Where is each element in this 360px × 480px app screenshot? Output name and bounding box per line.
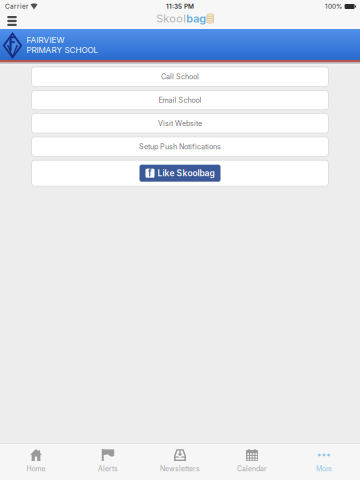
button[interactable]: Newsletters xyxy=(144,444,216,480)
button[interactable]: Home xyxy=(0,444,72,480)
staticText: Email School xyxy=(158,96,201,104)
button[interactable]: More xyxy=(288,444,360,480)
staticText: bag xyxy=(186,12,206,25)
staticText: More xyxy=(316,464,332,473)
staticText: Skool xyxy=(156,12,186,25)
staticText: Call School xyxy=(161,72,199,81)
staticText: Like Skoolbag xyxy=(157,168,214,178)
staticText: 11:35 PM xyxy=(166,3,194,10)
staticText: Carrier xyxy=(5,3,28,10)
staticText: FAIRVIEW xyxy=(26,35,64,45)
button[interactable]: f xyxy=(139,165,220,182)
staticText: PRIMARY SCHOOL xyxy=(26,45,98,55)
button[interactable]: Menu xyxy=(2,13,22,29)
button[interactable]: Setup Push Notifications xyxy=(31,137,328,156)
button[interactable]: Call School xyxy=(31,67,328,86)
button[interactable]: Email School xyxy=(31,90,328,110)
staticText: Home xyxy=(26,464,45,473)
button[interactable]: Alerts xyxy=(72,444,144,480)
staticText: Setup Push Notifications xyxy=(139,142,221,151)
staticText: Newsletters xyxy=(160,464,200,473)
staticText: f xyxy=(148,167,152,179)
button[interactable]: Visit Website xyxy=(31,114,328,133)
staticText: Alerts xyxy=(98,464,118,473)
staticText: Visit Website xyxy=(158,119,202,128)
button[interactable]: Calendar xyxy=(216,444,288,480)
staticText: Calendar xyxy=(237,464,267,473)
staticText: 100% xyxy=(325,3,342,10)
